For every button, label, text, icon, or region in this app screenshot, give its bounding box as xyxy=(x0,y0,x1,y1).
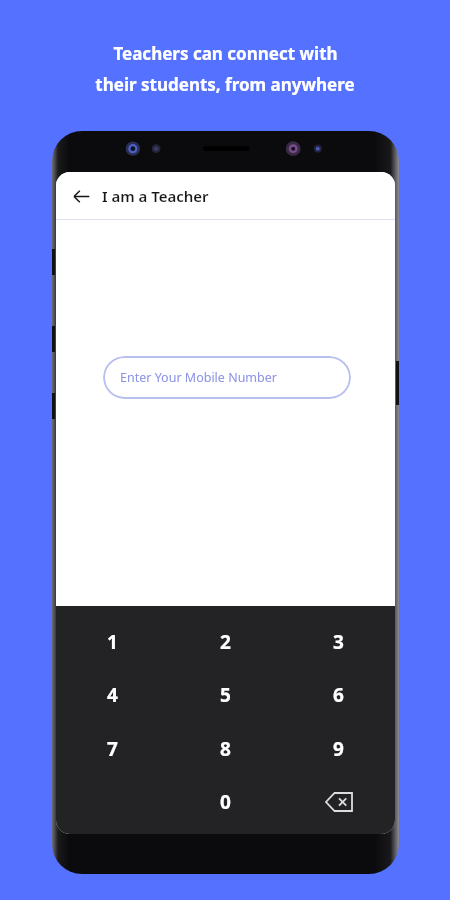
staticText: 0 xyxy=(220,789,231,815)
button[interactable]: Back xyxy=(66,181,96,211)
staticText: 1 xyxy=(107,629,118,655)
staticText: their students, from anywhere xyxy=(95,73,355,96)
staticText: I am a Teacher xyxy=(102,186,209,206)
button[interactable]: Backspace xyxy=(282,780,395,824)
staticText: Enter Your Mobile Number xyxy=(120,369,277,386)
button[interactable]: 8 xyxy=(169,727,282,771)
staticText: 9 xyxy=(333,736,344,762)
button[interactable]: 2 xyxy=(169,620,282,664)
button[interactable]: 9 xyxy=(282,727,395,771)
staticText: 7 xyxy=(107,736,118,762)
button[interactable]: 6 xyxy=(282,673,395,717)
staticText: 8 xyxy=(220,736,231,762)
button[interactable]: Enter Your Mobile Number xyxy=(103,356,351,399)
staticText: 6 xyxy=(333,682,344,708)
button[interactable]: 5 xyxy=(169,673,282,717)
button[interactable]: 1 xyxy=(56,620,169,664)
button[interactable]: 4 xyxy=(56,673,169,717)
button[interactable]: 7 xyxy=(56,727,169,771)
staticText: 2 xyxy=(220,629,231,655)
button[interactable]: 3 xyxy=(282,620,395,664)
staticText: 4 xyxy=(107,682,118,708)
button[interactable]: 0 xyxy=(169,780,282,824)
staticText: 5 xyxy=(220,682,231,708)
staticText: 3 xyxy=(333,629,344,655)
staticText: Teachers can connect with xyxy=(113,42,338,65)
